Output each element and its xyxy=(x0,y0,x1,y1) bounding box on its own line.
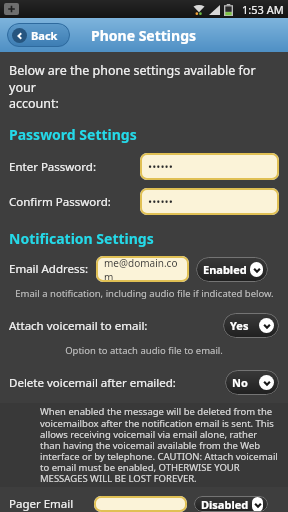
staticText: Delete voicemail after emailed: xyxy=(9,375,176,391)
button[interactable]: me@domain.com xyxy=(96,256,189,282)
staticText: Pager Email Address: xyxy=(9,496,74,512)
staticText: No xyxy=(232,375,248,390)
staticText: Email a notification, including audio fi… xyxy=(15,287,274,300)
staticText: Option to attach audio file to email. xyxy=(65,344,223,357)
other: Open dropdown xyxy=(259,318,274,333)
button[interactable]: •••••• xyxy=(140,153,279,180)
staticText: Enabled xyxy=(203,262,247,277)
other: Open dropdown xyxy=(250,262,263,277)
button[interactable]: Enabled xyxy=(196,257,268,282)
staticText: •••••• xyxy=(148,194,173,209)
button[interactable] xyxy=(94,496,187,512)
staticText: Email Address: xyxy=(9,261,89,277)
staticText: 1:53 AM xyxy=(242,2,284,17)
staticText: Disabled xyxy=(201,497,249,512)
button[interactable]: Yes xyxy=(223,313,279,338)
staticText: Phone Settings xyxy=(91,26,197,45)
staticText: me@domain.com xyxy=(104,256,181,282)
staticText: Yes xyxy=(230,318,249,333)
staticText: Enter Password: xyxy=(9,159,96,175)
staticText: •••••• xyxy=(148,159,173,174)
staticText: Back xyxy=(31,28,58,43)
button[interactable]: No xyxy=(225,370,279,395)
staticText: Below are the phone settings available f… xyxy=(9,62,279,111)
staticText: Password Settings xyxy=(9,125,137,144)
staticText: Attach voicemail to email: xyxy=(9,318,148,334)
other: Open dropdown xyxy=(259,375,274,390)
button[interactable]: Disabled xyxy=(194,496,268,512)
staticText: When enabled the message will be deleted… xyxy=(40,405,279,485)
button[interactable]: Back xyxy=(7,23,70,47)
staticText: Confirm Password: xyxy=(9,194,111,210)
button[interactable]: •••••• xyxy=(140,188,279,215)
staticText: Notification Settings xyxy=(9,229,154,248)
other: Open dropdown xyxy=(252,497,263,512)
